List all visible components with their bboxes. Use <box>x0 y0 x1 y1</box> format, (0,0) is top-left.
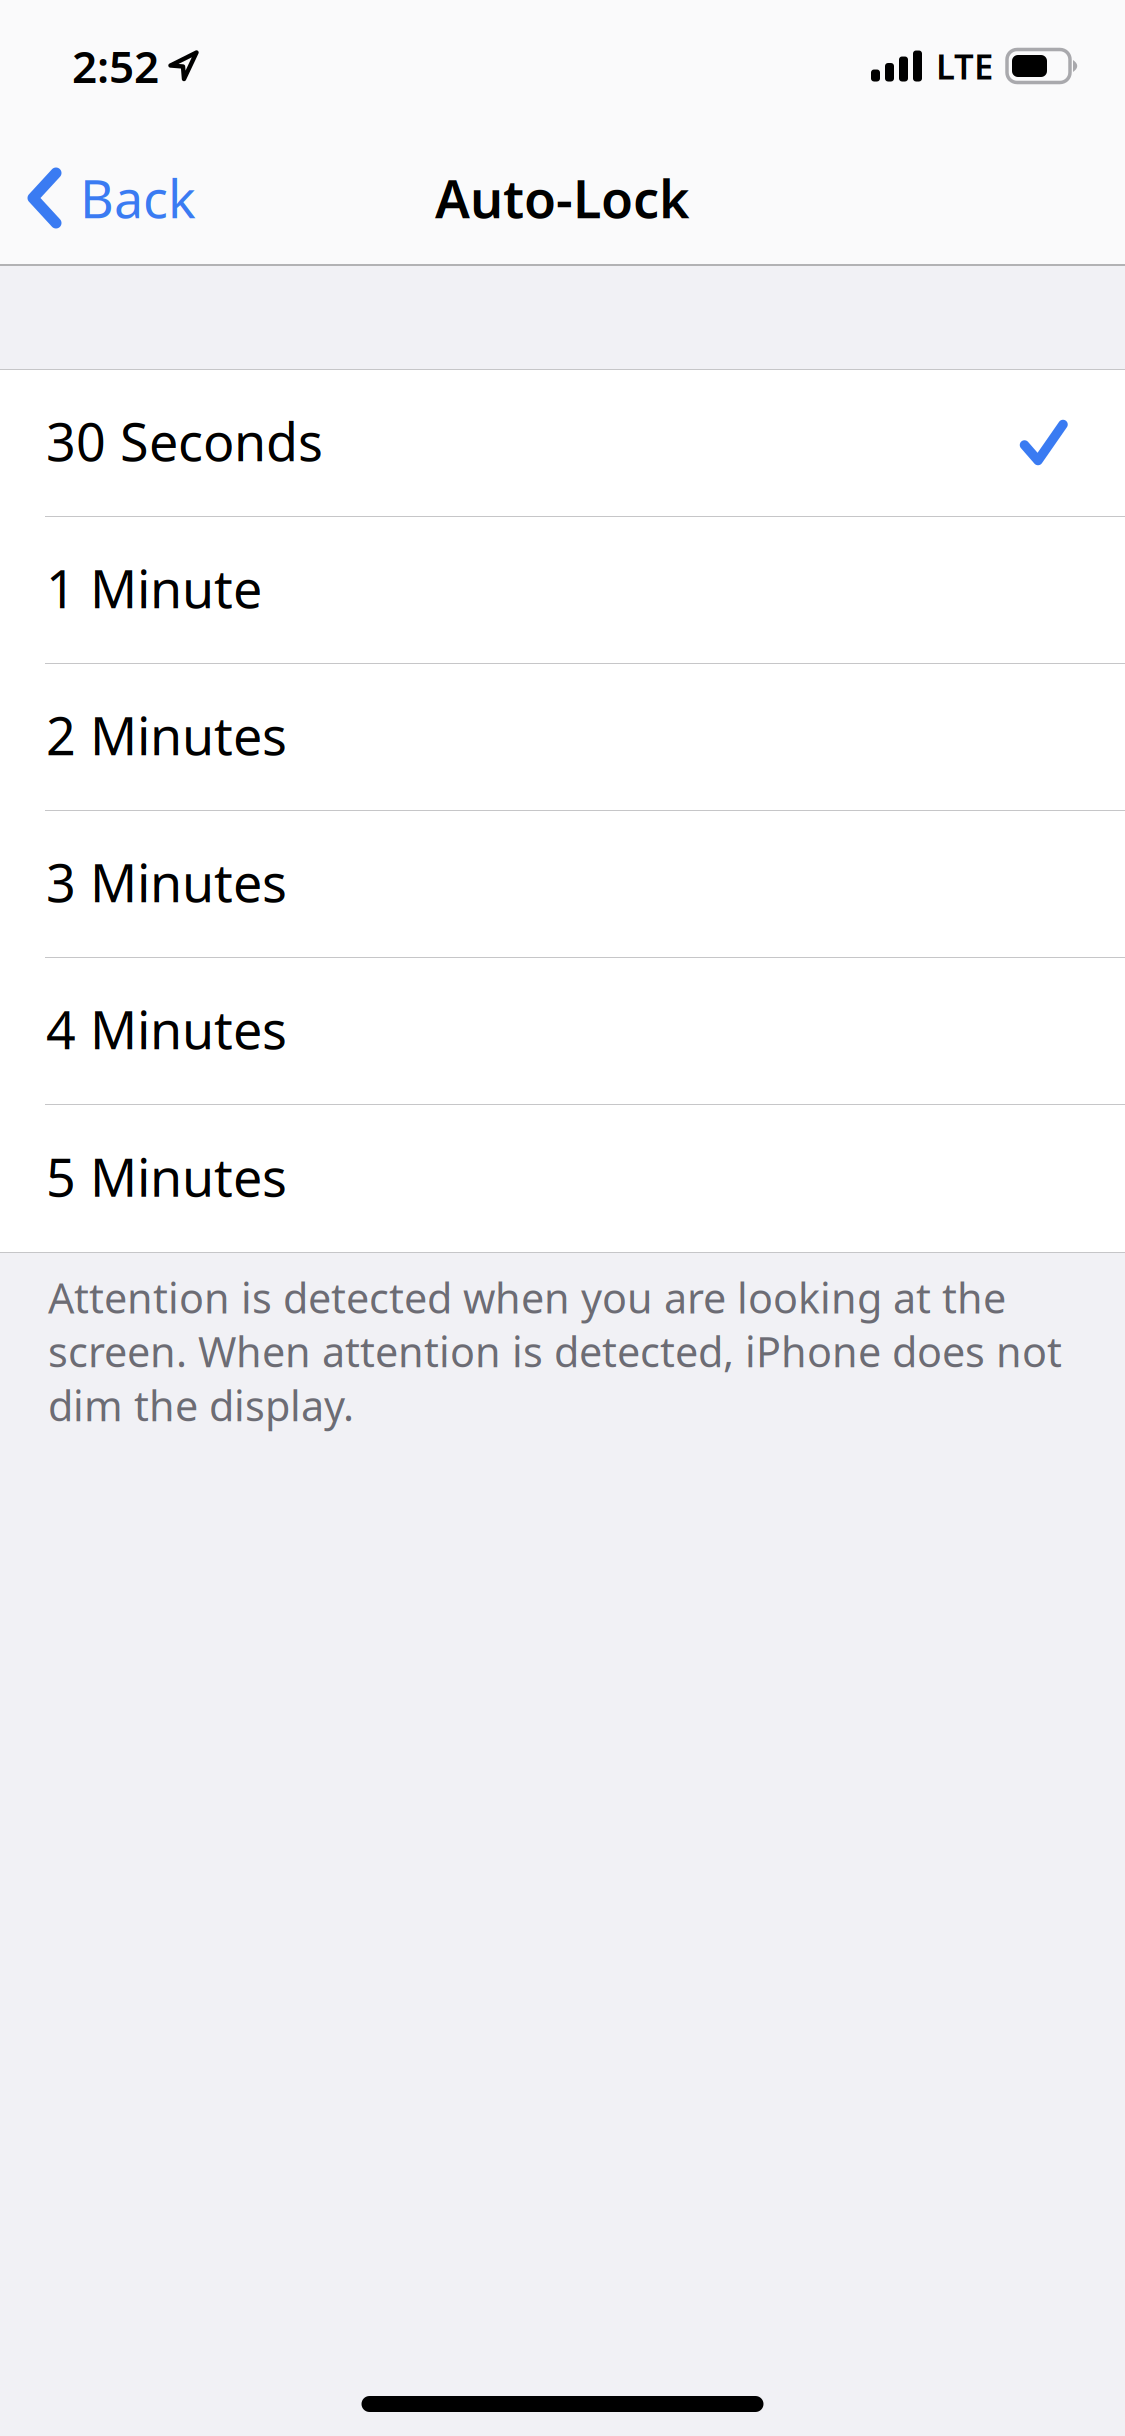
button[interactable]: Back <box>0 132 330 264</box>
staticText: 2:52 <box>72 37 159 95</box>
button[interactable]: 2 Minutes <box>0 664 1125 811</box>
button[interactable]: 4 Minutes <box>0 958 1125 1105</box>
button[interactable]: 3 Minutes <box>0 811 1125 958</box>
staticText: Attention is detected when you are looki… <box>48 1270 1062 1433</box>
button[interactable]: 1 Minute <box>0 517 1125 664</box>
staticText: 3 Minutes <box>46 847 287 917</box>
staticText: 1 Minute <box>46 553 262 623</box>
staticText: Auto-Lock <box>435 163 690 233</box>
staticText: 5 Minutes <box>46 1142 287 1211</box>
staticText: 4 Minutes <box>46 994 287 1064</box>
staticText: Back <box>80 163 196 233</box>
button[interactable]: 30 Seconds <box>0 370 1125 517</box>
staticText: LTE <box>936 43 993 89</box>
button[interactable]: 5 Minutes <box>0 1105 1125 1252</box>
staticText: 2 Minutes <box>46 700 287 770</box>
staticText: 30 Seconds <box>46 406 323 476</box>
